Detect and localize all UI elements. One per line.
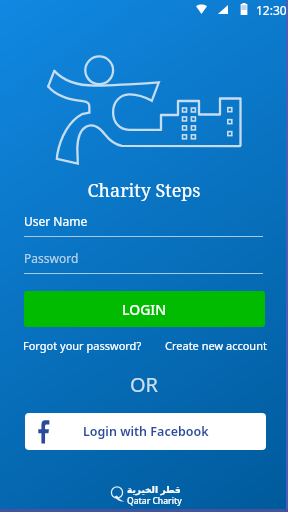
other: Signal (218, 5, 228, 14)
staticText: Qatar Charity (127, 495, 182, 507)
staticText: Password (24, 250, 79, 266)
staticText: LOGIN (122, 300, 167, 319)
button[interactable]: Login with Facebook (25, 413, 266, 450)
staticText: OR (0, 371, 288, 398)
button[interactable]: Create new account (165, 338, 267, 353)
button[interactable]: User Name (24, 210, 263, 239)
staticText: User Name (24, 213, 88, 229)
staticText: Charity Steps (0, 178, 288, 203)
staticText: Login with Facebook (83, 423, 209, 440)
button[interactable]: Forgot your password? (23, 338, 142, 353)
button[interactable]: LOGIN (24, 291, 265, 327)
button[interactable]: Password (24, 247, 263, 276)
staticText: 12:30 (256, 2, 287, 18)
staticText: قطر الخيرية (127, 483, 181, 495)
other: Wi-Fi (196, 4, 207, 14)
other: Battery (240, 3, 248, 15)
